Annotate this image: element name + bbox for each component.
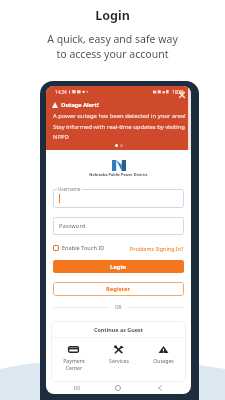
other: Home: [115, 385, 121, 391]
staticText: Register: [106, 285, 131, 293]
staticText: Enable Touch ID: [62, 244, 105, 252]
staticText: Login: [110, 263, 127, 271]
button[interactable]: Payment Center: [51, 338, 96, 382]
button[interactable]: Enable Touch ID: [53, 244, 105, 252]
staticText: Password: [59, 222, 86, 230]
staticText: A quick, easy and safe way to access you…: [0, 32, 225, 61]
staticText: Outage Alert!: [61, 101, 99, 109]
button[interactable]: Continue as Guest: [51, 321, 186, 337]
button[interactable]: Outages: [141, 338, 186, 382]
button[interactable]: Problems Signing In?: [130, 245, 184, 252]
button[interactable]: Login: [53, 260, 184, 273]
staticText: Continue as Guest: [94, 326, 143, 333]
staticText: 14:34: [55, 89, 67, 94]
staticText: Outages: [153, 357, 174, 364]
button[interactable]: [53, 189, 184, 208]
staticText: Nebraska Public Power District: [89, 172, 148, 177]
staticText: Services: [109, 357, 129, 364]
staticText: Login: [95, 7, 130, 24]
button[interactable]: Register: [53, 282, 184, 296]
button[interactable]: Services: [96, 338, 141, 382]
button[interactable]: Dismiss outage alert: [177, 90, 187, 100]
button[interactable]: [53, 217, 184, 235]
other: Back: [157, 385, 163, 391]
other: Recent apps: [74, 385, 80, 391]
staticText: A power outage has been detected in your…: [53, 112, 186, 141]
staticText: Payment Center: [63, 357, 85, 372]
staticText: 100%: [172, 89, 184, 94]
staticText: Username: [58, 186, 81, 192]
staticText: OR: [115, 304, 122, 310]
